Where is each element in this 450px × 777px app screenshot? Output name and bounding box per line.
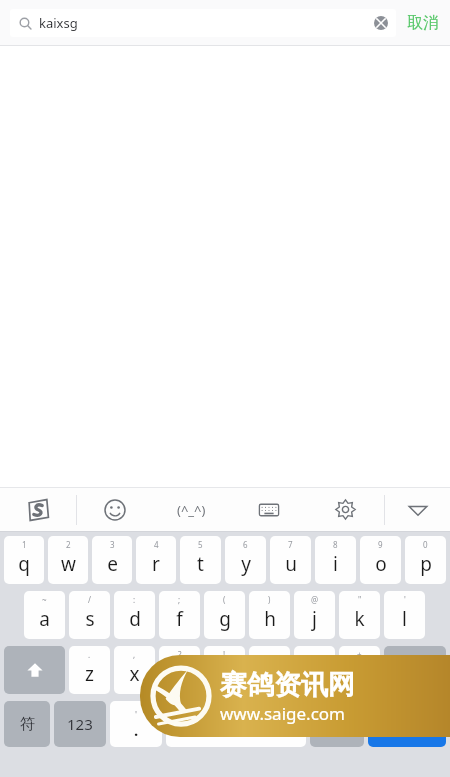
staticText: )	[268, 594, 271, 605]
button[interactable]: ~	[24, 591, 65, 639]
button[interactable]: +	[339, 646, 380, 694]
button[interactable]: 123	[54, 701, 106, 747]
staticText: +	[357, 649, 362, 660]
button[interactable]: 0	[405, 536, 446, 584]
staticText: 1	[22, 539, 27, 550]
button[interactable]: Space	[166, 701, 306, 747]
staticText: www.saige.com	[220, 702, 345, 725]
staticText: b	[264, 661, 276, 687]
staticText: v	[220, 661, 230, 687]
staticText: e	[107, 551, 118, 577]
staticText: 4	[154, 539, 159, 550]
button[interactable]: Sogou input method	[0, 487, 76, 532]
staticText: c	[175, 661, 185, 687]
staticText: m	[351, 661, 369, 687]
staticText: 取消	[407, 13, 439, 33]
staticText: h	[264, 606, 276, 632]
staticText: i	[333, 551, 338, 577]
staticText: o	[375, 551, 387, 577]
staticText: q	[18, 551, 30, 577]
staticText: '	[135, 708, 138, 720]
staticText: x	[129, 661, 140, 687]
button[interactable]: :	[114, 591, 155, 639]
button[interactable]: 9	[360, 536, 401, 584]
button[interactable]: 1	[4, 536, 44, 584]
button[interactable]: !	[204, 646, 245, 694]
staticText: 8	[333, 539, 338, 550]
staticText: !	[223, 649, 226, 660]
staticText: ,	[133, 649, 136, 660]
staticText: '	[404, 594, 406, 605]
button[interactable]: ;	[159, 591, 200, 639]
staticText: d	[129, 606, 141, 632]
button[interactable]: Keyboard layout	[230, 487, 307, 532]
staticText: n	[309, 661, 321, 687]
button[interactable]: 3	[92, 536, 132, 584]
button[interactable]: 中/英	[310, 701, 364, 747]
button[interactable]: Backspace	[384, 646, 446, 694]
staticText: 0	[423, 539, 428, 550]
staticText: kaixsg	[39, 14, 78, 32]
button[interactable]: kaixsg	[10, 9, 396, 37]
button[interactable]: Shift	[4, 646, 65, 694]
staticText: r	[152, 551, 160, 577]
button[interactable]: Settings	[307, 487, 384, 532]
staticText: y	[241, 551, 251, 577]
staticText: s	[85, 606, 95, 632]
staticText: "	[358, 594, 362, 605]
staticText: 123	[67, 714, 93, 734]
staticText: p	[420, 551, 432, 577]
staticText: :	[133, 594, 136, 605]
staticText: .	[134, 720, 139, 740]
button[interactable]: 6	[225, 536, 266, 584]
button[interactable]: ?	[159, 646, 200, 694]
staticText: l	[402, 606, 407, 632]
button[interactable]: Hide keyboard	[385, 487, 450, 532]
button[interactable]: 8	[315, 536, 356, 584]
staticText: 2	[66, 539, 71, 550]
button[interactable]: Kaomoji	[153, 487, 230, 532]
button[interactable]: '	[384, 591, 425, 639]
button[interactable]: "	[339, 591, 380, 639]
button[interactable]: 符	[4, 701, 50, 747]
button[interactable]: @	[294, 591, 335, 639]
button[interactable]: ,	[114, 646, 155, 694]
button[interactable]: 搜索	[368, 701, 446, 747]
staticText: @	[311, 594, 319, 605]
button[interactable]: (	[204, 591, 245, 639]
staticText: w	[61, 551, 76, 577]
staticText: k	[354, 606, 365, 632]
staticText: 7	[288, 539, 293, 550]
button[interactable]: 2	[48, 536, 88, 584]
staticText: 9	[378, 539, 383, 550]
staticText: 符	[20, 715, 35, 734]
staticText: .	[88, 649, 91, 660]
button[interactable]: 5	[180, 536, 221, 584]
staticText: a	[39, 606, 50, 632]
staticText: u	[285, 551, 297, 577]
staticText: 3	[110, 539, 115, 550]
button[interactable]: '	[110, 701, 162, 747]
button[interactable]: .	[69, 646, 110, 694]
button[interactable]: /	[69, 591, 110, 639]
button[interactable]: Clear text	[370, 12, 392, 34]
button[interactable]: 7	[270, 536, 311, 584]
button[interactable]: Emoji	[77, 487, 153, 532]
staticText: g	[219, 606, 231, 632]
staticText: /	[88, 594, 91, 605]
staticText: z	[85, 661, 94, 687]
button[interactable]: 取消	[396, 0, 450, 46]
staticText: 赛鸽资讯网	[220, 668, 355, 702]
staticText: (	[223, 594, 226, 605]
staticText: f	[176, 606, 183, 632]
staticText: _	[313, 649, 317, 660]
staticText: 中/英	[323, 716, 352, 732]
staticText: ?	[178, 649, 182, 660]
button[interactable]: )	[249, 591, 290, 639]
staticText: ;	[178, 594, 181, 605]
button[interactable]: 4	[136, 536, 176, 584]
button[interactable]: -	[249, 646, 290, 694]
staticText: 6	[243, 539, 248, 550]
staticText: 5	[198, 539, 203, 550]
button[interactable]: _	[294, 646, 335, 694]
